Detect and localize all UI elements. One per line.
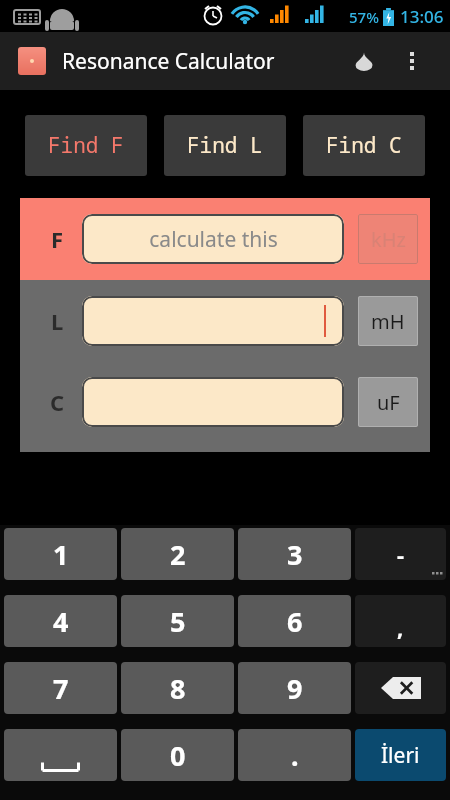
staticText: Find L <box>187 131 263 160</box>
button[interactable]: Find F <box>25 115 147 176</box>
button[interactable]: kHz <box>358 214 418 264</box>
staticText: 8 <box>170 670 186 707</box>
button[interactable]: Find L <box>164 115 286 176</box>
staticText: calculate this <box>149 225 278 254</box>
button[interactable]: calculate this <box>82 214 344 264</box>
button[interactable] <box>82 296 344 346</box>
staticText: Resonance Calculator <box>62 47 275 76</box>
staticText: 3 <box>287 536 303 573</box>
staticText: 5 <box>170 603 186 640</box>
staticText: İleri <box>381 741 420 770</box>
button[interactable]: 0 <box>121 729 234 781</box>
staticText: 2 <box>170 536 186 573</box>
button[interactable]: 1 <box>4 528 117 580</box>
staticText: 9 <box>287 670 303 707</box>
staticText: L <box>51 306 64 336</box>
staticText: 13:06 <box>400 5 444 28</box>
button[interactable]: 6 <box>238 595 351 647</box>
button[interactable]: 3 <box>238 528 351 580</box>
staticText: 0 <box>170 737 186 774</box>
button[interactable]: mH <box>358 296 418 346</box>
staticText: - <box>397 539 405 569</box>
staticText: 1 <box>53 536 69 573</box>
staticText: , <box>397 612 404 642</box>
button[interactable]: 8 <box>121 662 234 714</box>
button[interactable] <box>82 377 344 427</box>
button[interactable]: - <box>355 528 446 580</box>
staticText: 6 <box>287 603 303 640</box>
staticText: C <box>50 387 65 417</box>
staticText: 4 <box>53 603 69 640</box>
staticText: . <box>291 737 299 774</box>
button[interactable]: Backspace <box>355 662 446 714</box>
staticText: F <box>51 224 64 254</box>
button[interactable]: 5 <box>121 595 234 647</box>
button[interactable]: 2 <box>121 528 234 580</box>
staticText: mH <box>371 308 405 335</box>
button[interactable]: Find C <box>303 115 425 176</box>
staticText: Find C <box>326 131 402 160</box>
button[interactable]: Water drop <box>344 41 384 81</box>
button[interactable]: uF <box>358 377 418 427</box>
button[interactable]: 9 <box>238 662 351 714</box>
button[interactable]: İleri <box>355 729 446 781</box>
button[interactable]: 4 <box>4 595 117 647</box>
button[interactable]: 7 <box>4 662 117 714</box>
staticText: uF <box>377 389 400 416</box>
button[interactable]: Space <box>4 729 117 781</box>
button[interactable]: More options <box>392 41 432 81</box>
staticText: Find F <box>48 131 124 160</box>
button[interactable]: , <box>355 595 446 647</box>
button[interactable]: . <box>238 729 351 781</box>
staticText: kHz <box>371 226 406 253</box>
staticText: 7 <box>53 670 69 707</box>
staticText: 57% <box>349 7 379 27</box>
